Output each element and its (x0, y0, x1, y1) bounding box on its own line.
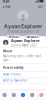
staticText: Product designer · SF (8, 30, 38, 33)
staticText: Ayaan Explorer (11, 38, 40, 43)
staticText: Ayaan Explorer (4, 23, 42, 30)
button[interactable]: Notifications (28, 90, 37, 100)
button[interactable]: Search (9, 90, 18, 100)
button[interactable]: Share Profile (0, 72, 46, 77)
staticText: 9:41 (2, 0, 9, 4)
button[interactable]: Message (25, 35, 40, 40)
button[interactable]: Ayaan Explorer (0, 38, 46, 47)
staticText: Back (5, 5, 10, 8)
staticText: ‹ (3, 3, 5, 10)
staticText: About (3, 49, 12, 53)
button[interactable]: Edit (36, 4, 44, 9)
staticText: Share Profile (3, 73, 21, 76)
button[interactable]: Back (1, 4, 11, 9)
staticText: Recent activity (3, 66, 23, 69)
staticText: Exploring cities, coffee and type. (3, 54, 41, 61)
staticText: Edit (38, 5, 43, 8)
button[interactable]: Follow (6, 35, 21, 40)
staticText: Follow (9, 35, 18, 39)
button[interactable]: Home (0, 90, 9, 100)
button[interactable]: Add to Favourites (0, 78, 46, 83)
staticText: Joined March 2021 (11, 44, 38, 47)
staticText: Message (26, 35, 38, 39)
staticText: Add to Favourites (3, 79, 27, 82)
button[interactable]: Profile (37, 90, 46, 100)
button[interactable]: Create (18, 90, 28, 100)
